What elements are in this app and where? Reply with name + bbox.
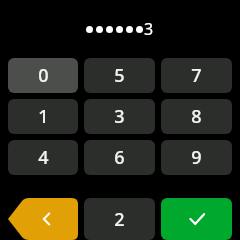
button[interactable]: 4 (8, 140, 78, 175)
staticText: 6 (114, 145, 125, 170)
staticText: 3 (114, 104, 125, 129)
button[interactable]: 3 (84, 99, 155, 134)
staticText: 9 (191, 145, 202, 170)
button[interactable]: Confirm (161, 198, 232, 240)
button[interactable]: 0 (8, 58, 78, 93)
button[interactable]: 5 (84, 58, 155, 93)
staticText: 4 (38, 145, 49, 170)
staticText: 5 (114, 63, 125, 88)
staticText: 7 (191, 63, 202, 88)
button[interactable]: 9 (161, 140, 232, 175)
button[interactable]: 2 (84, 198, 155, 240)
button[interactable]: 1 (8, 99, 78, 134)
staticText: 8 (191, 104, 202, 129)
staticText: 3 (144, 18, 154, 40)
staticText: 0 (38, 63, 49, 88)
staticText: 1 (38, 104, 49, 129)
button[interactable]: 6 (84, 140, 155, 175)
button[interactable]: Backspace (8, 198, 78, 240)
button[interactable]: 7 (161, 58, 232, 93)
button[interactable]: 8 (161, 99, 232, 134)
staticText: 2 (114, 207, 125, 232)
